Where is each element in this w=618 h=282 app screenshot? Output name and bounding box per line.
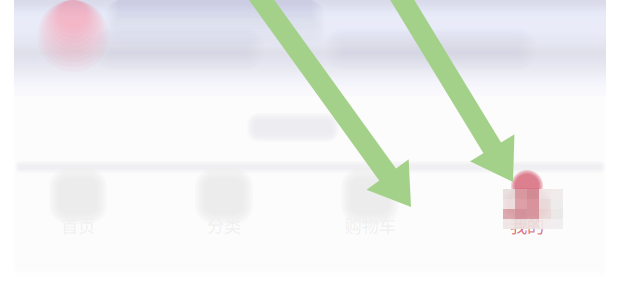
staticText: 分类 [207,212,241,238]
button[interactable]: 分类 [0,0,618,282]
staticText: 我的 [510,212,544,238]
button[interactable]: 首页 [0,0,618,282]
staticText: 首页 [61,212,95,238]
staticText: 购物车 [344,212,395,238]
button[interactable]: 购物车 [0,0,618,282]
button[interactable]: 我的 [0,0,618,282]
